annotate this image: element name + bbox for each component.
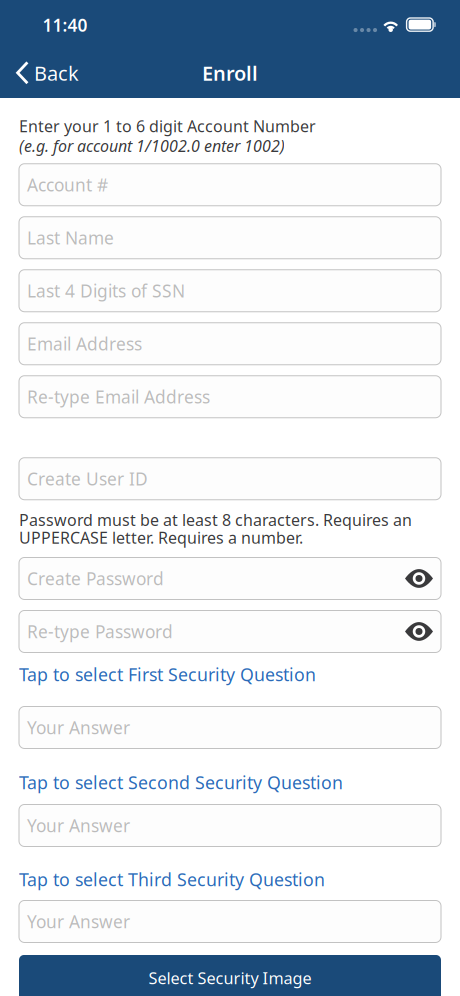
staticText: Your Answer xyxy=(27,816,130,835)
staticText: Tap to select Second Security Question xyxy=(19,773,343,792)
staticText: Create User ID xyxy=(27,469,148,488)
staticText: Your Answer xyxy=(27,718,130,737)
staticText: Re-type Email Address xyxy=(27,387,210,406)
staticText: Select Security Image xyxy=(148,969,311,987)
button[interactable]: Re-type Password xyxy=(19,610,441,652)
button[interactable]: Email Address xyxy=(19,323,441,365)
button[interactable]: Last 4 Digits of SSN xyxy=(19,270,441,312)
button[interactable]: Your Answer xyxy=(19,900,441,942)
staticText: Tap to select First Security Question xyxy=(19,665,316,684)
staticText: 11:40 xyxy=(42,15,87,35)
button[interactable]: Tap to select Second Security Question xyxy=(19,770,441,794)
staticText: Password must be at least 8 characters. … xyxy=(19,511,412,546)
staticText: (e.g. for account 1/1002.0 enter 1002) xyxy=(19,137,285,155)
button[interactable]: Select Security Image xyxy=(19,955,441,996)
button[interactable]: Re-type Email Address xyxy=(19,376,441,418)
staticText: Tap to select Third Security Question xyxy=(19,870,325,889)
button[interactable]: Your Answer xyxy=(19,706,441,748)
staticText: Last 4 Digits of SSN xyxy=(27,281,185,300)
staticText: Enter your 1 to 6 digit Account Number xyxy=(19,117,316,135)
button[interactable]: Tap to select First Security Question xyxy=(19,662,441,686)
button[interactable]: Back xyxy=(0,48,91,98)
staticText: Email Address xyxy=(27,334,142,353)
staticText: Back xyxy=(34,61,79,85)
button[interactable]: Last Name xyxy=(19,217,441,259)
staticText: Re-type Password xyxy=(27,622,173,641)
button[interactable]: Create User ID xyxy=(19,458,441,500)
staticText: Account # xyxy=(27,175,108,194)
staticText: Last Name xyxy=(27,228,114,247)
staticText: Create Password xyxy=(27,569,164,588)
button[interactable]: Create Password xyxy=(19,557,441,599)
button[interactable]: Tap to select Third Security Question xyxy=(19,867,441,891)
staticText: Enroll xyxy=(202,61,258,85)
button[interactable]: Account # xyxy=(19,164,441,206)
button[interactable]: Your Answer xyxy=(19,804,441,846)
staticText: Your Answer xyxy=(27,912,130,931)
